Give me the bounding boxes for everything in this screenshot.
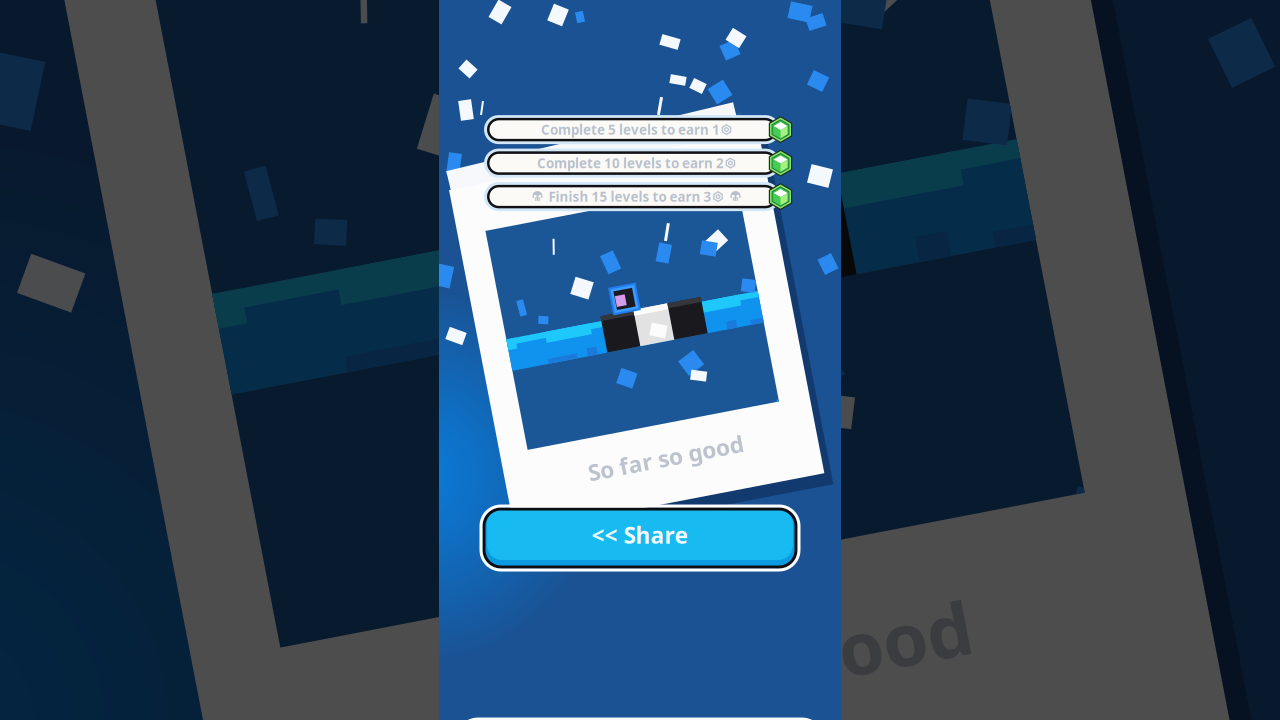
staticText: Complete 10 levels to earn 2: [537, 154, 724, 172]
staticText: Finish 15 levels to earn 3: [548, 188, 711, 205]
staticText: << Share: [591, 520, 688, 550]
staticText: So far so good: [562, 446, 720, 476]
button[interactable]: Complete 10 levels to earn 2: [487, 152, 795, 174]
button[interactable]: Complete 5 levels to earn 1: [487, 119, 795, 141]
staticText: << Share: [591, 520, 688, 550]
staticText: Finish 15 levels to earn 3: [548, 188, 711, 205]
staticText: Complete 5 levels to earn 1: [541, 121, 720, 138]
staticText: So far so good: [562, 446, 720, 476]
staticText: Complete 10 levels to earn 2: [537, 154, 724, 172]
button[interactable]: Finish 15 levels to earn 3: [487, 186, 795, 208]
button[interactable]: << Share: [481, 506, 799, 570]
button[interactable]: Complete 5 levels to earn 1: [487, 119, 795, 141]
button[interactable]: Complete 10 levels to earn 2: [487, 152, 795, 174]
button[interactable]: Finish 15 levels to earn 3: [487, 186, 795, 208]
button[interactable]: << Share: [481, 506, 799, 570]
staticText: Complete 5 levels to earn 1: [541, 121, 720, 138]
